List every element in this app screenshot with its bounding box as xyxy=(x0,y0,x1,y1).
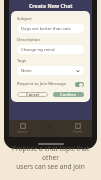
staticText: Description xyxy=(17,37,40,43)
button[interactable]: None xyxy=(17,66,84,75)
button[interactable]: Change my mind xyxy=(17,45,84,54)
staticText: None xyxy=(21,68,32,74)
staticText: Profile xyxy=(73,130,83,134)
staticText: Propose a chat topic that other users ca… xyxy=(5,144,96,171)
staticText: Search xyxy=(17,130,28,134)
staticText: Change my mind xyxy=(21,47,55,53)
button[interactable]: Dogs are better than cats xyxy=(17,24,84,33)
button[interactable]: Search xyxy=(9,120,36,137)
button[interactable]: Confirm xyxy=(53,92,84,97)
staticText: Tags xyxy=(17,58,27,64)
button[interactable]: Cancel xyxy=(17,92,48,97)
staticText: Request to Join Message xyxy=(17,81,66,87)
button[interactable]: Profile xyxy=(64,120,92,137)
staticText: Dogs are better than cats xyxy=(21,26,71,32)
staticText: Create New Chat xyxy=(29,2,73,9)
button[interactable]: Request to Join Message xyxy=(17,80,84,88)
staticText: Cancel xyxy=(26,92,40,97)
other: Request to join message toggle xyxy=(75,82,84,87)
staticText: Confirm xyxy=(60,92,77,97)
staticText: Subject xyxy=(17,16,32,22)
